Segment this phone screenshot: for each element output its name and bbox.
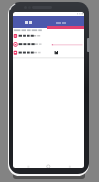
button[interactable] [13,16,49,29]
button[interactable] [44,162,52,168]
button[interactable] [13,33,84,41]
button[interactable] [13,50,84,58]
button[interactable] [13,16,84,28]
button[interactable] [13,41,84,49]
button[interactable] [49,16,84,29]
